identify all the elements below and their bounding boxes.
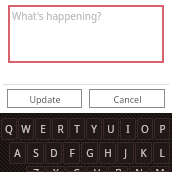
staticText: Q bbox=[5, 122, 13, 136]
staticText: B bbox=[115, 166, 122, 172]
staticText: L bbox=[159, 146, 165, 160]
staticText: W bbox=[21, 122, 31, 136]
button[interactable]: P bbox=[154, 118, 170, 140]
button[interactable]: D bbox=[45, 142, 62, 164]
button[interactable]: Q bbox=[1, 118, 17, 140]
staticText: F bbox=[69, 146, 75, 160]
staticText: Update bbox=[29, 93, 61, 105]
staticText: V bbox=[94, 166, 100, 172]
button[interactable]: E bbox=[35, 118, 51, 140]
staticText: D bbox=[50, 146, 58, 160]
button[interactable]: Cancel bbox=[89, 89, 165, 108]
button[interactable]: N bbox=[129, 166, 149, 172]
staticText: U bbox=[107, 122, 115, 136]
button[interactable]: H bbox=[99, 142, 116, 164]
staticText: Cancel bbox=[113, 93, 142, 105]
button[interactable]: J bbox=[117, 142, 134, 164]
button[interactable]: C bbox=[66, 166, 86, 172]
staticText: E bbox=[40, 122, 46, 136]
staticText: O bbox=[141, 122, 149, 136]
button[interactable]: Z bbox=[26, 166, 45, 172]
staticText: What's happening? bbox=[12, 9, 102, 23]
button[interactable]: A bbox=[9, 142, 26, 164]
button[interactable]: X bbox=[46, 166, 65, 172]
staticText: K bbox=[140, 146, 147, 160]
button[interactable]: B bbox=[108, 166, 128, 172]
button[interactable]: K bbox=[135, 142, 152, 164]
button[interactable]: M bbox=[150, 166, 170, 172]
staticText: Z bbox=[33, 166, 39, 172]
button[interactable]: O bbox=[137, 118, 153, 140]
staticText: P bbox=[159, 122, 166, 136]
staticText: J bbox=[124, 146, 127, 160]
staticText: S bbox=[33, 146, 39, 160]
staticText: C bbox=[73, 166, 80, 172]
staticText: H bbox=[104, 146, 112, 160]
staticText: Y bbox=[91, 122, 97, 136]
button[interactable]: T bbox=[69, 118, 85, 140]
staticText: T bbox=[74, 122, 80, 136]
staticText: X bbox=[53, 166, 59, 172]
button[interactable]: G bbox=[81, 142, 98, 164]
button[interactable]: S bbox=[27, 142, 44, 164]
button[interactable]: V bbox=[87, 166, 107, 172]
button[interactable]: W bbox=[18, 118, 34, 140]
button[interactable]: R bbox=[52, 118, 68, 140]
button[interactable]: L bbox=[153, 142, 170, 164]
staticText: M bbox=[155, 166, 165, 172]
staticText: N bbox=[135, 166, 143, 172]
staticText: A bbox=[14, 146, 21, 160]
button[interactable]: F bbox=[63, 142, 80, 164]
staticText: R bbox=[57, 122, 64, 136]
button[interactable]: U bbox=[103, 118, 119, 140]
button[interactable]: Y bbox=[86, 118, 102, 140]
button[interactable]: Update bbox=[7, 89, 82, 108]
button[interactable]: I bbox=[120, 118, 136, 140]
button[interactable]: What's happening? bbox=[8, 5, 164, 63]
staticText: G bbox=[86, 146, 94, 160]
staticText: I bbox=[126, 122, 130, 136]
